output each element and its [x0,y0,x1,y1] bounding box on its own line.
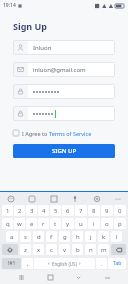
button[interactable]: z [20,244,31,255]
button[interactable]: h [72,231,83,242]
button[interactable]: Tab [108,258,126,269]
staticText: u [79,220,83,228]
button[interactable]: . [96,258,107,269]
staticText: !#1 [8,260,16,267]
staticText: 5 [54,207,58,215]
staticText: g [63,233,67,241]
button[interactable]: 6 [62,205,74,216]
staticText: . [101,260,103,268]
button[interactable]: Home [43,270,57,284]
button[interactable]: I Agree to [13,128,115,138]
staticText: d [37,233,41,241]
button[interactable]: Clipboard [48,193,59,204]
staticText: 1 [6,207,10,215]
button[interactable]: !#1 [2,258,21,269]
staticText: English (US) [52,261,77,267]
button[interactable]: r [38,218,49,229]
button[interactable]: Inluon [13,40,115,55]
button[interactable]: f [46,231,57,242]
staticText: v [63,246,67,254]
staticText: k [102,233,106,241]
button[interactable]: t [50,218,61,229]
button[interactable]: 8 [88,205,100,216]
button[interactable]: n [85,244,96,255]
staticText: › [79,260,81,267]
button[interactable]: More [112,193,123,204]
button[interactable]: d [33,231,44,242]
staticText: t [54,220,57,228]
staticText: a [10,233,14,241]
staticText: h [76,233,80,241]
button[interactable]: 9 [101,205,113,216]
button[interactable]: Settings [91,193,102,204]
button[interactable]: SIGN UP [13,144,115,158]
staticText: n [89,246,93,254]
button[interactable]: ‹ [34,258,95,269]
button[interactable]: v [59,244,70,255]
button[interactable]: q [2,218,13,229]
button[interactable]: Stickers [26,193,37,204]
button[interactable]: e [26,218,37,229]
button[interactable]: s [20,231,31,242]
button[interactable]: m [98,244,109,255]
staticText: Inluon [33,44,52,52]
button[interactable]: u [75,218,87,229]
staticText: SIGN UP [52,147,77,155]
staticText: 4 [42,207,46,215]
staticText: 0 [118,207,122,215]
button[interactable]: Recents [14,270,28,284]
button[interactable]: a [6,231,18,242]
staticText: o [105,220,109,228]
staticText: 8 [92,207,96,215]
staticText: 6 [66,207,70,215]
button[interactable]: c [46,244,57,255]
staticText: s [24,233,27,241]
button[interactable]: l [111,231,122,242]
button[interactable]: p [114,218,126,229]
button[interactable]: i [88,218,100,229]
staticText: 7 [79,207,83,215]
button[interactable]: w [14,218,25,229]
button[interactable]: j [85,231,96,242]
staticText: y [66,220,70,228]
staticText: Sign Up [13,20,48,32]
button[interactable]: Voice input [69,193,80,204]
button[interactable]: Shift [2,244,18,255]
button[interactable]: y [62,218,74,229]
staticText: m [101,246,107,254]
staticText: f [50,233,53,241]
staticText: 19:14 [3,2,16,9]
button[interactable]: , [22,258,33,269]
button[interactable] [13,106,115,121]
button[interactable]: inluon@gmail.com [13,62,115,77]
staticText: w [17,220,22,228]
button[interactable]: 7 [75,205,87,216]
staticText: x [37,246,41,254]
button[interactable]: 3 [26,205,37,216]
button[interactable]: x [33,244,44,255]
button[interactable]: Emoji [5,193,16,204]
button[interactable]: o [101,218,113,229]
button[interactable]: k [98,231,109,242]
staticText: e [30,220,34,228]
button[interactable]: Back [71,270,85,284]
button[interactable]: Keyboard toggle [100,270,114,284]
staticText: j [90,233,92,241]
button[interactable]: 4 [38,205,49,216]
button[interactable]: 5 [50,205,61,216]
button[interactable]: g [59,231,70,242]
button[interactable]: 0 [114,205,126,216]
button[interactable]: 2 [14,205,25,216]
staticText: 9 [105,207,109,215]
staticText: p [118,220,122,228]
button[interactable]: Backspace [111,244,126,255]
staticText: Tab [113,260,122,267]
button[interactable]: b [72,244,83,255]
button[interactable]: 1 [2,205,13,216]
staticText: 2 [18,207,22,215]
button[interactable] [13,84,115,99]
staticText: b [76,246,80,254]
staticText: 3 [30,207,34,215]
staticText: Terms of Service [49,130,92,137]
staticText: l [116,233,118,241]
